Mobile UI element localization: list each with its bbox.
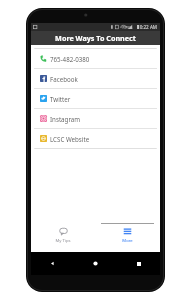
staticText: 75% xyxy=(125,25,133,30)
button[interactable]: Twitter xyxy=(34,89,157,108)
staticText: Facebook xyxy=(50,75,78,83)
button[interactable]: Instagram xyxy=(34,109,157,128)
button[interactable]: My Tips xyxy=(31,221,95,252)
button[interactable]: 765-482-0380 xyxy=(34,49,157,68)
staticText: 765-482-0380 xyxy=(50,55,90,63)
button[interactable]: Facebook xyxy=(34,69,157,88)
button[interactable]: LCSC Website xyxy=(34,129,157,148)
button[interactable]: Recent apps xyxy=(117,252,160,275)
button[interactable]: Back xyxy=(31,252,74,275)
staticText: LCSC Website xyxy=(50,135,90,143)
staticText: Instagram xyxy=(50,115,81,123)
staticText: More Ways To Connect xyxy=(55,33,136,43)
button[interactable]: More xyxy=(95,221,160,252)
staticText: More xyxy=(122,238,133,244)
staticText: My Tips xyxy=(55,238,71,244)
staticText: 10:22 AM xyxy=(137,24,158,30)
staticText: Twitter xyxy=(50,95,71,103)
button[interactable]: Home xyxy=(74,252,117,275)
